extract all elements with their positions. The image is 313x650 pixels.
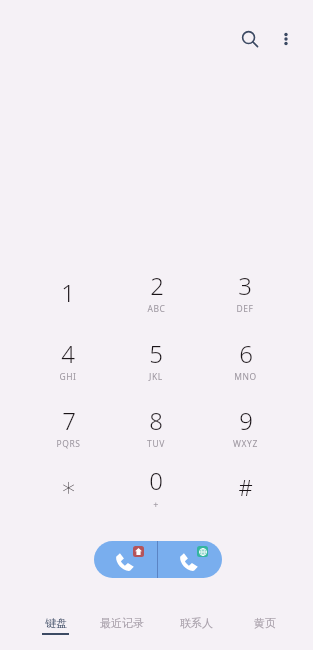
staticText: 8 (149, 404, 163, 437)
button[interactable]: More options (269, 22, 303, 56)
staticText: 4 (61, 337, 75, 370)
button[interactable]: 1 (31, 265, 105, 319)
button[interactable]: 0 (119, 460, 193, 514)
staticText: 2 (150, 269, 164, 302)
staticText: 联系人 (180, 616, 213, 630)
button[interactable]: 7 (31, 400, 105, 454)
button[interactable]: 2 (119, 265, 193, 319)
staticText: TUV (147, 438, 165, 450)
staticText: 黄页 (254, 616, 276, 630)
staticText: 7 (62, 404, 76, 437)
button[interactable]: 8 (119, 400, 193, 454)
button[interactable]: 4 (31, 333, 105, 387)
button[interactable]: Call with SIM 2 (158, 541, 222, 578)
staticText: ABC (147, 303, 166, 315)
staticText: 键盘 (45, 616, 67, 630)
staticText: 0 (149, 464, 163, 497)
staticText: DEF (236, 303, 254, 315)
staticText: 5 (149, 337, 163, 370)
button[interactable]: 9 (208, 400, 282, 454)
button[interactable]: 最近记录 (91, 616, 153, 646)
staticText: + (153, 498, 159, 510)
staticText: 6 (239, 337, 253, 370)
staticText: WXYZ (233, 438, 258, 450)
staticText: 1 (61, 276, 75, 309)
button[interactable]: 3 (208, 265, 282, 319)
staticText: # (238, 472, 253, 502)
staticText: 9 (239, 404, 253, 437)
button[interactable]: # (208, 460, 282, 514)
button[interactable]: 联系人 (165, 616, 227, 646)
staticText: GHI (59, 371, 77, 383)
staticText: 3 (238, 269, 252, 302)
button[interactable]: 5 (119, 333, 193, 387)
button[interactable]: Search (233, 22, 267, 56)
button[interactable]: 6 (208, 333, 282, 387)
button[interactable]: 黄页 (234, 616, 296, 646)
button[interactable]: Call with SIM 1 (94, 541, 157, 578)
staticText: PQRS (56, 438, 81, 450)
staticText: MNO (234, 371, 257, 383)
staticText: JKL (149, 371, 163, 383)
staticText: ∗ (60, 472, 77, 502)
button[interactable]: ∗ (31, 460, 105, 514)
staticText: 最近记录 (100, 616, 144, 630)
button[interactable]: 键盘 (24, 616, 86, 646)
